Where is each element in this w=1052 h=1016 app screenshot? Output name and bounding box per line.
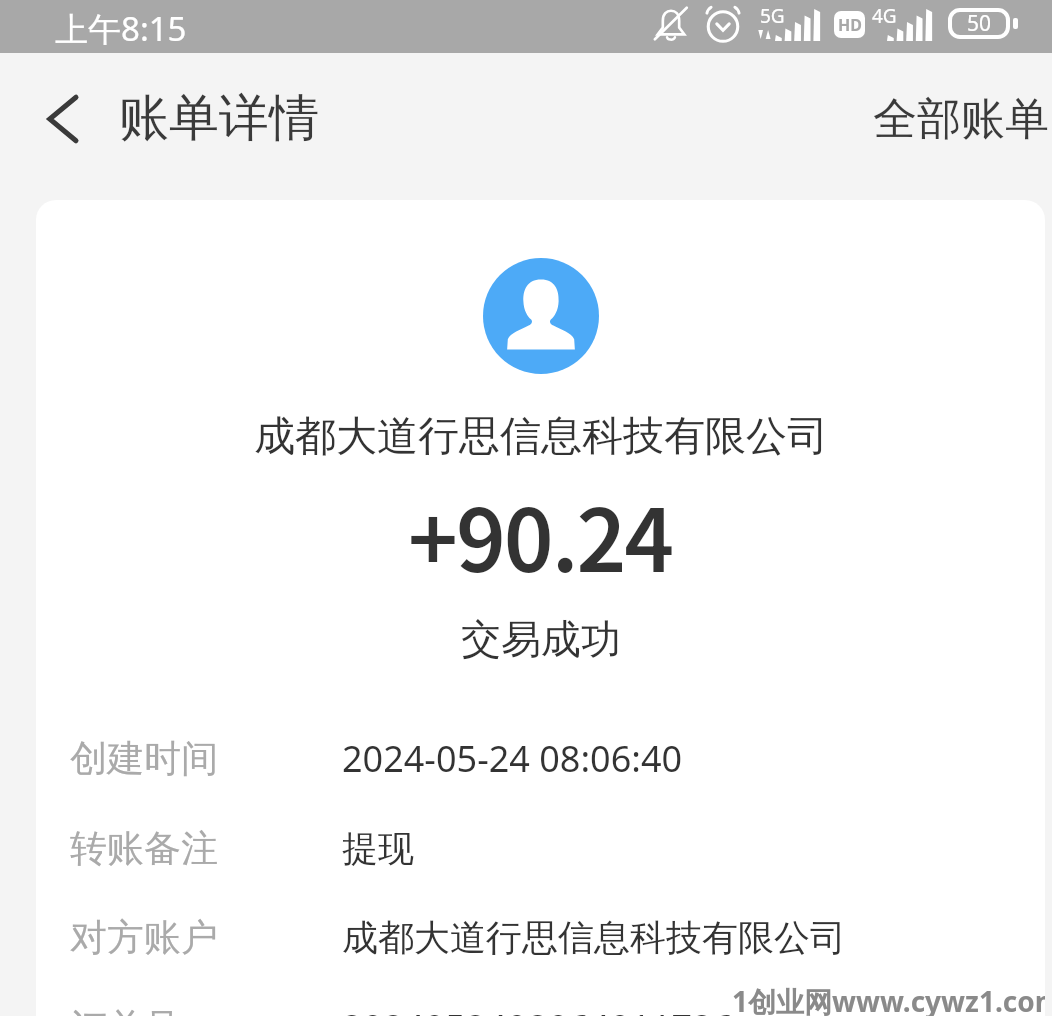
staticText: 提现 — [342, 826, 414, 871]
button[interactable]: 订单号 — [36, 982, 1045, 1016]
staticText: 创建时间 — [70, 735, 218, 782]
staticText: 账单详情 — [119, 87, 319, 150]
staticText: 成都大道行思信息科技有限公司 — [254, 411, 828, 463]
staticText: +90.24 — [408, 472, 673, 597]
staticText: 交易成功 — [461, 614, 621, 664]
staticText: 5G — [760, 3, 785, 29]
staticText: 1创业网www.cywz1.com — [732, 982, 1045, 1016]
staticText: HD — [838, 14, 862, 36]
staticText: 2024052408064011726 — [342, 1003, 734, 1016]
staticText: 50 — [967, 9, 992, 38]
staticText: 成都大道行思信息科技有限公司 — [342, 915, 846, 960]
staticText: 转账备注 — [70, 825, 218, 872]
button[interactable]: Back — [0, 79, 331, 158]
staticText: 订单号 — [70, 1004, 181, 1016]
button[interactable]: 转账备注 — [36, 804, 1045, 893]
staticText: 全部账单 — [873, 92, 1049, 147]
staticText: 4G — [872, 3, 897, 29]
staticText: 2024-05-24 08:06:40 — [342, 734, 683, 783]
staticText: 对方账户 — [70, 914, 218, 961]
staticText: 上午8:15 — [55, 6, 187, 51]
button[interactable]: 全部账单 — [870, 84, 1052, 155]
button[interactable]: 对方账户 — [36, 893, 1045, 982]
button[interactable]: 创建时间 — [36, 713, 1045, 804]
other: Back — [41, 94, 91, 144]
